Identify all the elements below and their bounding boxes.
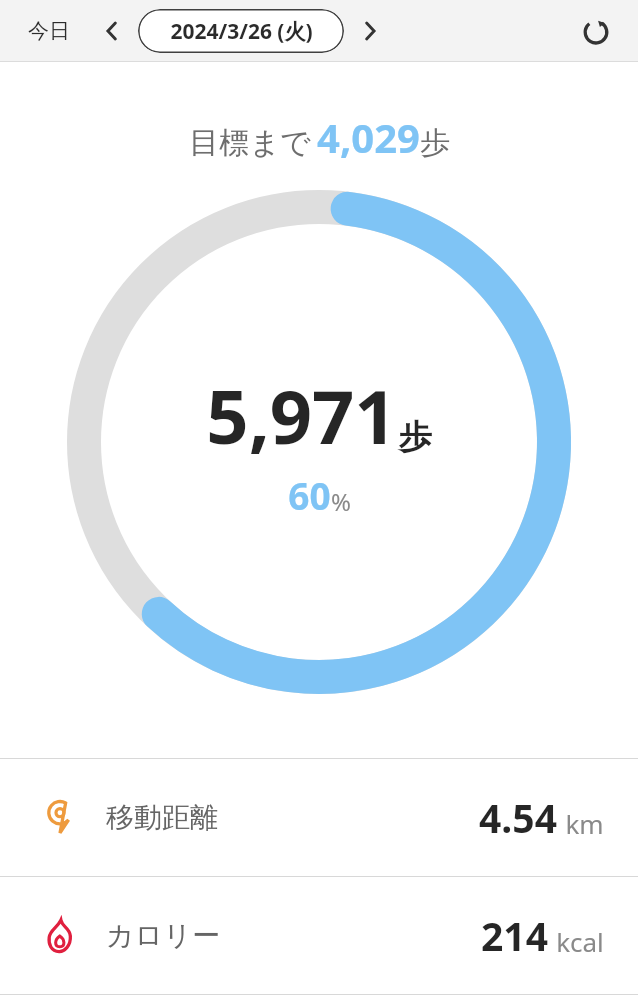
other: Calories	[38, 914, 82, 958]
button[interactable]: Distance	[0, 759, 638, 876]
staticText: カロリー	[106, 918, 220, 953]
other: Distance	[38, 796, 82, 840]
staticText: 4.54	[479, 791, 557, 844]
staticText: 今日	[28, 18, 70, 44]
button[interactable]: Previous day	[92, 11, 132, 51]
button[interactable]: 2024/3/26 (火)	[138, 9, 344, 53]
staticText: 4,029	[317, 110, 420, 164]
staticText: 214	[481, 909, 548, 962]
staticText: 歩	[399, 416, 432, 458]
staticText: 目標まで	[189, 124, 311, 162]
button[interactable]: Refresh	[572, 7, 620, 55]
button[interactable]: Calories	[0, 877, 638, 994]
staticText: 歩	[420, 124, 450, 162]
staticText: 5,971	[206, 365, 397, 466]
staticText: 2024/3/26 (火)	[170, 17, 313, 46]
staticText: %	[331, 485, 351, 518]
staticText: kcal	[556, 924, 604, 959]
button[interactable]: 今日	[22, 12, 76, 50]
staticText: 60	[288, 470, 331, 520]
staticText: km	[565, 806, 604, 841]
staticText: 移動距離	[106, 800, 218, 835]
button[interactable]: Next day	[350, 11, 390, 51]
